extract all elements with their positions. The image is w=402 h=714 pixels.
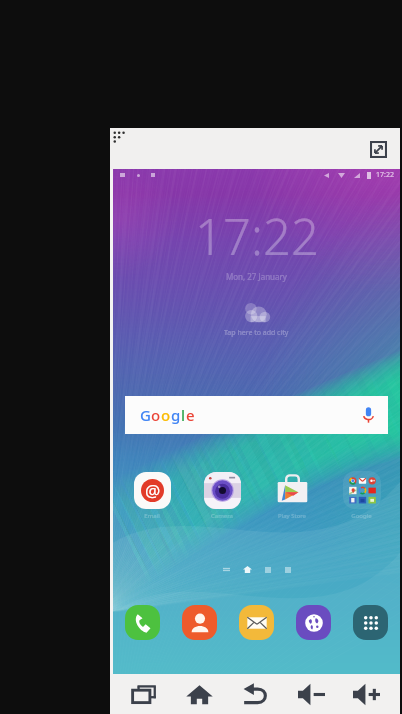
button[interactable] [223, 566, 230, 573]
staticText: Tap here to add city [224, 328, 289, 338]
button[interactable]: Messages [239, 605, 274, 640]
staticText: 17:22 [195, 203, 319, 270]
staticText: G [140, 405, 151, 425]
staticText: Mon, 27 January [226, 271, 287, 282]
button[interactable]: Back [233, 674, 277, 714]
button[interactable]: Volume down [289, 674, 333, 714]
staticText: l [181, 405, 186, 425]
button[interactable]: @ [124, 471, 179, 520]
staticText: e [186, 405, 195, 425]
button[interactable]: Contacts [182, 605, 217, 640]
button[interactable]: Internet [296, 605, 331, 640]
staticText: g [171, 405, 181, 425]
button[interactable]: Apps [353, 605, 388, 640]
staticText: 17:22 [376, 170, 394, 180]
button[interactable]: G [125, 396, 388, 434]
staticText: Camera [211, 512, 233, 520]
button[interactable]: Recent apps [122, 674, 166, 714]
button[interactable]: Camera [194, 471, 249, 520]
staticText: Email [144, 512, 160, 520]
button[interactable]: Play Store [264, 471, 319, 520]
staticText: o [151, 405, 161, 425]
button[interactable]: Google [334, 471, 389, 520]
staticText: Google [351, 512, 372, 520]
staticText: o [161, 405, 171, 425]
button[interactable]: Home [177, 674, 221, 714]
other: Voice search [363, 407, 374, 423]
button[interactable]: Expand to full screen [365, 136, 391, 162]
staticText: Play Store [278, 512, 306, 520]
button[interactable]: Volume up [344, 674, 388, 714]
button[interactable]: Phone [125, 605, 160, 640]
staticText: @ [145, 479, 161, 502]
